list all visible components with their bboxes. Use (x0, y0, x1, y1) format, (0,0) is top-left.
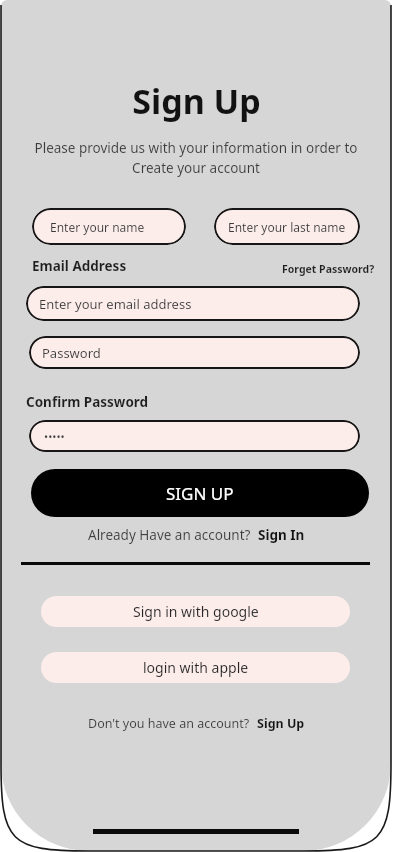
button[interactable]: Forget Password? (282, 259, 375, 273)
staticText: Please provide us with your information … (31, 139, 361, 177)
button[interactable]: SIGN UP (31, 469, 369, 517)
staticText: Sign In (258, 526, 305, 544)
staticText: ••••• (44, 429, 65, 444)
staticText: Password (42, 344, 101, 362)
button[interactable]: Sign In (258, 526, 305, 544)
staticText: Sign Up (257, 715, 305, 732)
staticText: Already Have an account? (88, 526, 251, 544)
staticText: Forget Password? (282, 262, 375, 276)
staticText: Don't you have an account? (88, 715, 250, 732)
staticText: Confirm Password (26, 393, 149, 411)
button[interactable]: Sign Up (257, 715, 305, 732)
staticText: SIGN UP (166, 482, 234, 505)
button[interactable]: ••••• (29, 420, 360, 452)
staticText: Enter your email address (39, 295, 192, 313)
button[interactable]: Password (29, 336, 360, 369)
button[interactable]: Enter your last name (214, 208, 360, 245)
staticText: Sign in with google (133, 602, 259, 621)
button[interactable]: Enter your email address (26, 286, 360, 321)
staticText: Email Address (32, 257, 127, 275)
staticText: Enter your name (50, 219, 145, 235)
button[interactable]: Sign in with google (41, 596, 350, 627)
staticText: login with apple (143, 658, 249, 677)
staticText: Enter your last name (228, 219, 346, 235)
staticText: Sign Up (132, 78, 261, 124)
button[interactable]: login with apple (41, 652, 350, 683)
button[interactable]: Enter your name (32, 208, 186, 245)
